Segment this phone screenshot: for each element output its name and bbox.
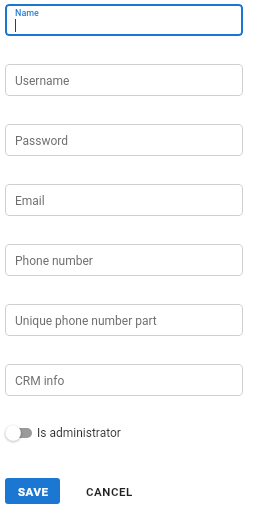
button[interactable]: Is administrator (5, 424, 121, 442)
button[interactable]: Username (5, 64, 243, 96)
staticText: Password (15, 134, 69, 148)
button[interactable]: CANCEL (76, 478, 143, 504)
button[interactable]: Unique phone number part (5, 304, 243, 336)
staticText: Unique phone number part (15, 314, 157, 328)
staticText: CRM info (15, 374, 65, 388)
button[interactable]: Email (5, 184, 243, 216)
button[interactable]: CRM info (5, 364, 243, 396)
staticText: Phone number (15, 254, 93, 268)
staticText: CANCEL (86, 485, 133, 498)
staticText: SAVE (18, 485, 49, 498)
staticText: Username (15, 74, 70, 88)
button[interactable]: Name (5, 4, 243, 36)
staticText: Is administrator (37, 426, 121, 440)
button[interactable]: Phone number (5, 244, 243, 276)
button[interactable]: SAVE (5, 478, 60, 504)
staticText: Name (15, 8, 39, 19)
staticText: Email (15, 194, 45, 208)
button[interactable]: Password (5, 124, 243, 156)
